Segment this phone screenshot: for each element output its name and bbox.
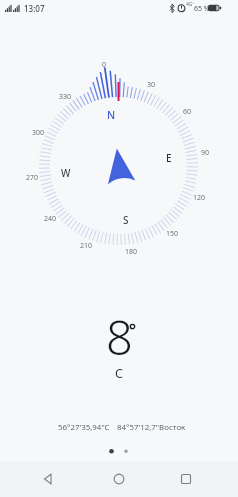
- button[interactable]: [162, 461, 210, 497]
- button[interactable]: [24, 461, 72, 497]
- staticText: 13:07: [24, 3, 45, 14]
- staticText: С: [115, 365, 124, 382]
- staticText: W: [61, 166, 71, 180]
- staticText: 0: [102, 60, 107, 70]
- staticText: 270: [26, 173, 39, 183]
- staticText: 330: [59, 92, 72, 102]
- staticText: 150: [166, 229, 179, 239]
- staticText: 30: [147, 80, 156, 90]
- staticText: 90: [201, 148, 210, 158]
- staticText: E: [166, 151, 172, 165]
- staticText: 210: [80, 241, 93, 251]
- staticText: S: [123, 213, 129, 227]
- staticText: 8: [106, 305, 133, 369]
- staticText: 60: [183, 107, 192, 117]
- staticText: 56°27'35,94"С: [58, 422, 110, 433]
- staticText: 4G⁺: [186, 1, 195, 8]
- staticText: 84°57'12,7"Восток: [117, 422, 186, 433]
- staticText: 180: [125, 247, 138, 257]
- staticText: 300: [32, 128, 45, 138]
- staticText: N: [107, 108, 116, 122]
- staticText: 65 %: [194, 4, 210, 14]
- staticText: 120: [193, 193, 206, 203]
- staticText: 240: [44, 214, 57, 224]
- button[interactable]: [95, 461, 143, 497]
